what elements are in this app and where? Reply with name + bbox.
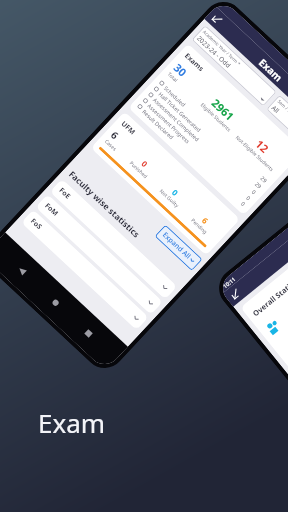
staticText: Hall Ticket Generated xyxy=(157,90,203,134)
button[interactable]: FoE xyxy=(50,179,177,300)
button[interactable]: Expand All xyxy=(154,225,203,271)
staticText: Not Guilty xyxy=(158,188,180,209)
staticText: Faculty wise statistics xyxy=(66,168,142,240)
staticText: 6 xyxy=(200,215,211,226)
staticText: Pending xyxy=(189,217,209,236)
staticText: UFM xyxy=(119,119,137,137)
button[interactable]: FoS xyxy=(21,209,149,330)
staticText: Expand All xyxy=(160,230,193,261)
staticText: 0 xyxy=(245,194,253,202)
button[interactable]: FoM xyxy=(35,194,163,315)
button[interactable]: Overall Statistics xyxy=(240,168,288,370)
staticText: Scheduled xyxy=(163,84,187,108)
staticText: Academic Year / Term * xyxy=(202,29,243,67)
staticText: Sem / Year * xyxy=(276,98,288,121)
button[interactable]: Sem / Year * xyxy=(266,95,288,147)
button[interactable]: UFM xyxy=(90,111,240,256)
staticText: 10:11 xyxy=(221,275,237,290)
staticText: FoM xyxy=(42,201,60,218)
button[interactable]: Home xyxy=(46,293,65,311)
staticText: Punished xyxy=(128,160,149,180)
button[interactable]: Recent apps xyxy=(79,323,98,342)
staticText: 2961 xyxy=(209,95,238,124)
button[interactable]: Back xyxy=(13,261,31,280)
button[interactable]: Back xyxy=(209,11,225,27)
staticText: 6 xyxy=(108,128,122,142)
staticText: 12 xyxy=(252,136,272,156)
staticText: 0 xyxy=(139,158,150,169)
staticText: Cases xyxy=(103,138,118,153)
button[interactable]: Exams xyxy=(128,43,288,215)
staticText: 29 xyxy=(259,174,269,184)
staticText: 0 xyxy=(170,187,181,198)
staticText: All xyxy=(270,103,282,115)
button[interactable]: Academic Year / Term * xyxy=(191,25,277,107)
staticText: Exam xyxy=(38,405,106,440)
staticText: FoE xyxy=(57,186,73,202)
staticText: FoS xyxy=(28,216,44,233)
staticText: Overall Statistics xyxy=(250,270,288,318)
staticText: Not-Eligible Students xyxy=(234,134,275,173)
staticText: Eligible Students xyxy=(199,101,233,134)
staticText: 2023-24 - Odd xyxy=(195,34,233,70)
staticText: Exam xyxy=(256,55,286,85)
staticText: Result Declared xyxy=(141,108,176,141)
staticText: 30 xyxy=(171,60,190,80)
staticText: Total xyxy=(166,71,179,84)
button[interactable]: Back xyxy=(227,286,243,302)
staticText: Exams xyxy=(182,51,206,74)
staticText: Assessment Progress xyxy=(146,102,191,145)
staticText: 0 xyxy=(240,200,247,208)
staticText: 29 xyxy=(254,180,264,190)
staticText: Assessment Completed xyxy=(152,96,201,143)
staticText: 0 xyxy=(251,188,258,196)
